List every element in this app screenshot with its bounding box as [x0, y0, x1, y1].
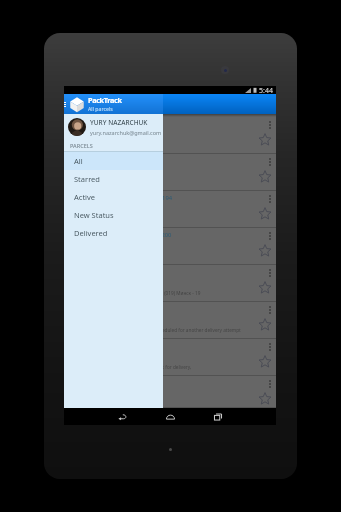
staticText: New Status — [74, 210, 114, 220]
staticText: 18 Mar 2014, 08:10, Minsk-19, Belarus. O… — [70, 364, 192, 370]
staticText: EE551234567CN, Minsk, Belarus - 194 — [70, 194, 173, 202]
staticText: RB123456789BY — [70, 120, 115, 128]
staticText: Starred — [74, 174, 100, 184]
button[interactable]: Star — [257, 206, 273, 221]
button[interactable]: Star — [257, 132, 273, 147]
button[interactable]: More options — [267, 304, 273, 316]
staticText: LZ000111222DE, Minsk, Belarus - 200 — [70, 231, 172, 239]
staticText: Arrived at sorting centre — [70, 216, 124, 222]
staticText: PackTrack — [88, 95, 122, 105]
staticText: 17 Mar 2014, 12:45, Minsk, Belarus. Resc… — [70, 327, 241, 333]
button[interactable]: More options — [267, 267, 273, 279]
button[interactable]: EE551234567CN, Minsk, Belarus - 194 — [64, 191, 276, 228]
button[interactable]: Back — [113, 408, 131, 425]
button[interactable]: More options — [267, 193, 273, 205]
staticText: 12 Mar 2014, 09:20, Belarus, Minsk-19 de… — [70, 290, 201, 296]
staticText: PARCELS — [70, 142, 93, 149]
button[interactable]: New Status — [64, 206, 163, 224]
button[interactable]: Star — [257, 317, 273, 332]
button[interactable]: RB123456789BY — [64, 117, 276, 154]
button[interactable]: More options — [267, 119, 273, 131]
staticText: YURY NAZARCHUK — [90, 118, 148, 127]
button[interactable]: YURY NAZARCHUK — [64, 114, 163, 139]
button[interactable]: More options — [267, 230, 273, 242]
button[interactable]: Starred — [64, 170, 163, 188]
staticText: Delivered — [74, 228, 108, 238]
staticText: All — [74, 156, 83, 166]
button[interactable]: Star — [257, 243, 273, 258]
button[interactable]: LZ000111222DE, Minsk, Belarus - 200 — [64, 228, 276, 265]
button[interactable]: Star — [257, 354, 273, 369]
staticText: Handed over to the courier — [70, 179, 130, 185]
staticText: Active — [74, 192, 96, 202]
button[interactable]: All — [64, 152, 163, 170]
button[interactable]: Active — [64, 188, 163, 206]
button[interactable]: Home — [161, 408, 179, 425]
button[interactable]: More options — [267, 341, 273, 353]
staticText: 5:44 — [259, 86, 273, 94]
button[interactable]: More options — [267, 156, 273, 168]
button[interactable]: Star — [257, 280, 273, 295]
button[interactable]: Delivered — [64, 224, 163, 242]
button[interactable]: Star — [257, 169, 273, 184]
button[interactable]: More options — [267, 378, 273, 390]
button[interactable]: CP987654321US — [64, 154, 276, 191]
staticText: yury.nazarchuk@gmail.com — [90, 129, 162, 136]
staticText: CP987654321US — [70, 157, 115, 165]
button[interactable]: PL112233445IT — [64, 339, 276, 376]
staticText: Delivered, 12 Mar 2014 — [70, 142, 121, 148]
button[interactable]: Star — [257, 391, 273, 406]
button[interactable]: QQ556677889ES — [64, 376, 276, 408]
button[interactable]: UX778899001FR — [64, 302, 276, 339]
button[interactable]: RA334455667PL — [64, 265, 276, 302]
button[interactable]: Recents — [209, 408, 227, 425]
staticText: All parcels — [88, 105, 113, 112]
